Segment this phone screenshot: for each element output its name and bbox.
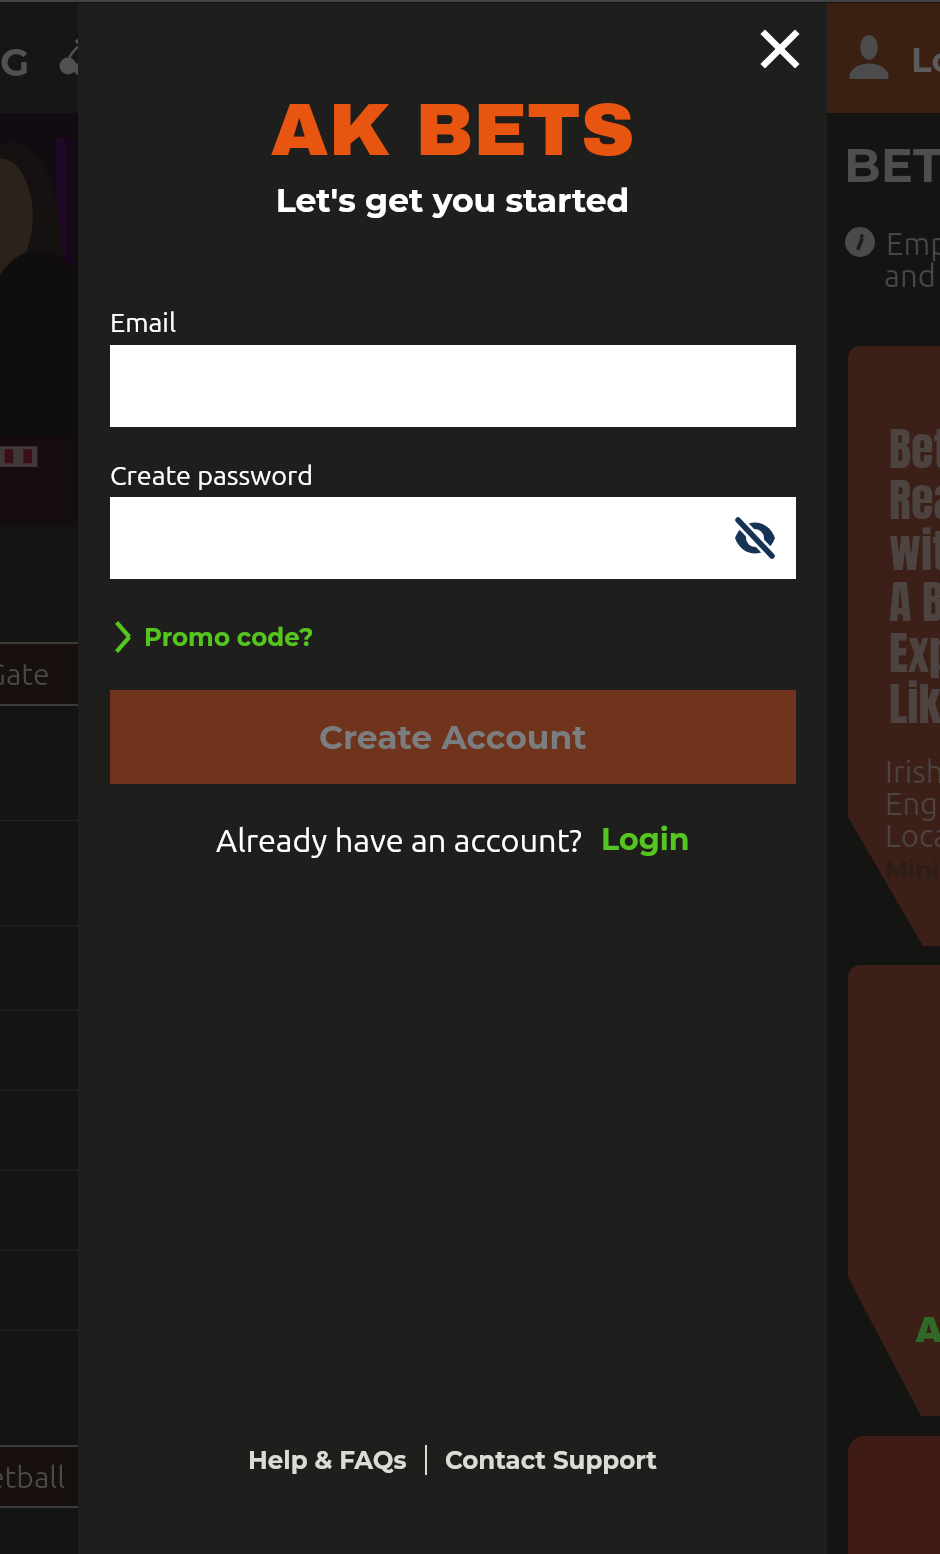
staticText: Email <box>110 307 176 337</box>
staticText: Gate Fie <box>0 657 64 691</box>
staticText: Create Account <box>319 717 587 757</box>
staticText: Engli <box>885 786 940 821</box>
staticText: Already have an account? <box>216 822 583 858</box>
button[interactable]: Show password <box>110 497 796 579</box>
staticText: Irish - <box>885 754 940 789</box>
staticText: Local <box>885 818 940 853</box>
staticText: with <box>889 516 940 585</box>
staticText: Bet <box>889 414 940 483</box>
button[interactable]: Login <box>601 821 690 858</box>
staticText: AK BETS <box>78 90 827 171</box>
staticText: Minimu <box>885 855 940 884</box>
button[interactable]: Create Account <box>110 690 796 784</box>
staticText: A B <box>889 567 940 636</box>
staticText: and t <box>884 258 940 293</box>
button[interactable]: Close <box>735 4 825 94</box>
staticText: Contact Support <box>445 1445 657 1475</box>
staticText: Rea <box>889 465 940 534</box>
staticText: Login <box>601 821 690 858</box>
staticText: Promo code? <box>144 622 314 652</box>
staticText: A <box>915 1310 940 1349</box>
staticText: Help & FAQs <box>248 1445 407 1475</box>
staticText: etball <box>0 1460 66 1494</box>
button[interactable]: Help & FAQs <box>248 1445 407 1475</box>
staticText: BETS <box>844 136 940 195</box>
button[interactable]: Contact Support <box>445 1445 657 1475</box>
staticText: Create password <box>110 460 314 490</box>
button[interactable]: Show password <box>724 507 786 569</box>
staticText: Exp <box>889 618 940 687</box>
staticText: Login <box>911 39 940 80</box>
staticText: Let's get you started <box>78 180 827 220</box>
staticText: Emp <box>886 226 940 261</box>
button[interactable]: Promo code? <box>110 616 314 658</box>
staticText: Like <box>889 669 940 738</box>
staticText: G <box>0 39 30 85</box>
